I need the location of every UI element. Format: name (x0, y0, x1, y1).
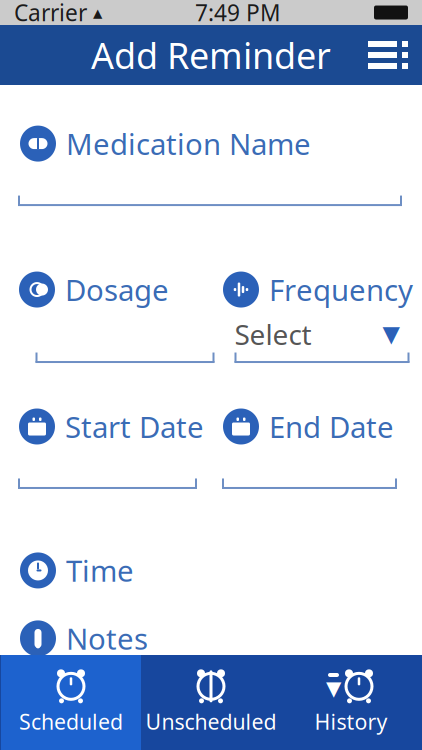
staticText: Dosage (65, 270, 169, 309)
staticText: History (314, 707, 387, 736)
button[interactable]: Scheduled (1, 655, 141, 750)
staticText: Notes (66, 619, 148, 658)
staticText: ▼ (382, 321, 399, 347)
staticText: ▼ (326, 677, 341, 700)
staticText: Add Reminder (91, 31, 331, 79)
staticText: Select (234, 315, 311, 353)
staticText: Time (66, 551, 134, 590)
staticText: 7:49 PM (195, 0, 281, 27)
button[interactable]: Menu (354, 29, 422, 81)
staticText: Medication Name (66, 124, 311, 163)
staticText: Carrier (14, 0, 87, 27)
button[interactable]: ▼ (281, 655, 421, 750)
staticText: End Date (269, 407, 394, 446)
staticText: Unscheduled (145, 707, 276, 736)
staticText: Start Date (65, 407, 204, 446)
staticText: Frequency (269, 270, 413, 309)
button[interactable]: Select (227, 319, 417, 363)
button[interactable]: Unscheduled (141, 655, 281, 750)
staticText: Scheduled (19, 707, 123, 736)
staticText: ▴ (93, 2, 102, 23)
